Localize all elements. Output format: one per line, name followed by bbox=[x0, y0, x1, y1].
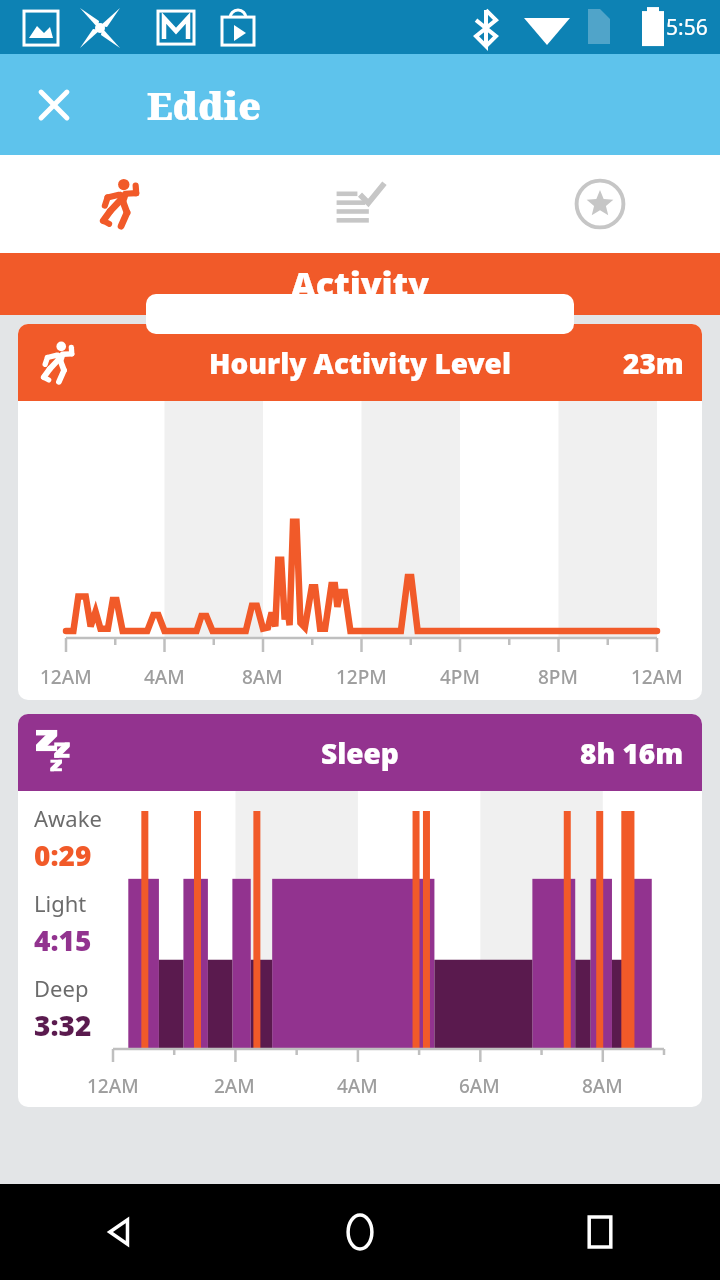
staticText: Deep bbox=[34, 973, 89, 1003]
staticText: 12AM bbox=[87, 1073, 139, 1099]
staticText: 12PM bbox=[336, 664, 387, 690]
staticText: 4AM bbox=[144, 664, 185, 690]
staticText: Hourly Activity Level bbox=[209, 344, 511, 382]
staticText: 8PM bbox=[538, 664, 578, 690]
staticText: Awake bbox=[34, 803, 102, 833]
button[interactable]: Close bbox=[20, 71, 88, 139]
staticText: 6AM bbox=[459, 1073, 500, 1099]
button[interactable]: Log tab bbox=[240, 155, 480, 253]
staticText: Eddie bbox=[147, 79, 261, 131]
button[interactable]: Activity tab bbox=[0, 155, 240, 253]
staticText: Light bbox=[34, 888, 87, 918]
button[interactable]: Activity bbox=[0, 253, 720, 315]
staticText: 8AM bbox=[242, 664, 283, 690]
staticText: 5:56 bbox=[666, 13, 708, 42]
staticText: 12AM bbox=[631, 664, 683, 690]
staticText: 4PM bbox=[440, 664, 480, 690]
button[interactable]: Back bbox=[0, 1184, 240, 1280]
staticText: Activity bbox=[291, 261, 429, 307]
button[interactable]: Home bbox=[240, 1184, 480, 1280]
staticText: 4:15 bbox=[34, 921, 92, 959]
staticText: 23m bbox=[623, 344, 684, 382]
button[interactable]: Achievements tab bbox=[480, 155, 720, 253]
staticText: 8h 16m bbox=[580, 734, 684, 772]
staticText: Sleep bbox=[321, 734, 399, 772]
button[interactable]: Recents bbox=[480, 1184, 720, 1280]
button[interactable]: Hourly Activity Level bbox=[18, 324, 702, 700]
staticText: 0:29 bbox=[34, 836, 92, 874]
staticText: 12AM bbox=[40, 664, 92, 690]
staticText: 3:32 bbox=[34, 1006, 92, 1044]
staticText: 2AM bbox=[214, 1073, 255, 1099]
button[interactable]: Sleep bbox=[18, 714, 702, 1107]
staticText: 4AM bbox=[337, 1073, 378, 1099]
staticText: 8AM bbox=[582, 1073, 623, 1099]
